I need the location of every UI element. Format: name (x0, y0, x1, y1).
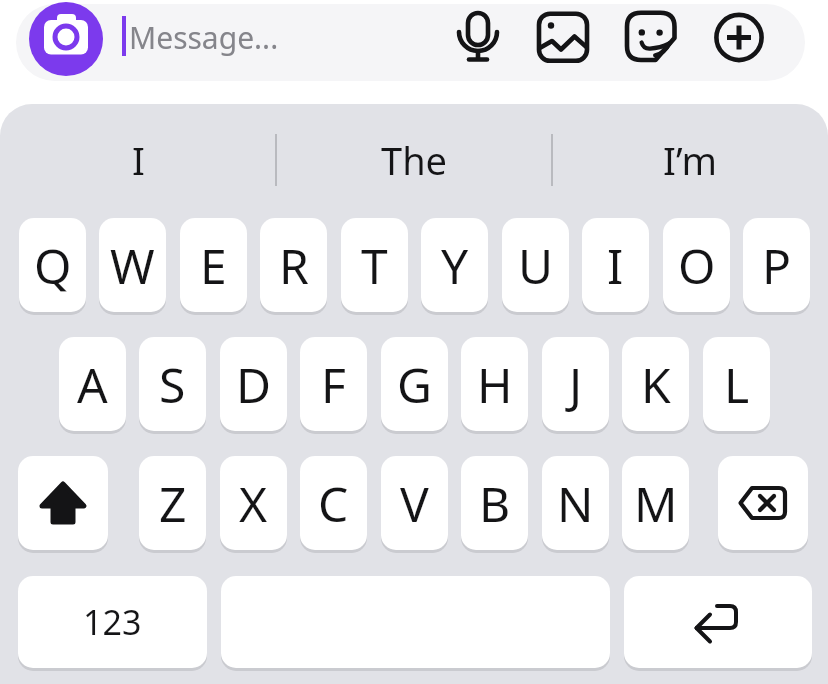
button[interactable]: W (99, 218, 166, 312)
button[interactable]: O (663, 218, 730, 312)
button[interactable]: T (341, 218, 408, 312)
button[interactable]: I (0, 112, 276, 208)
button[interactable]: B (461, 456, 528, 550)
button[interactable]: I’m (552, 112, 828, 208)
staticText: F (321, 352, 346, 417)
staticText: K (641, 352, 671, 417)
button[interactable]: F (300, 337, 367, 431)
button[interactable] (538, 12, 588, 62)
staticText: A (77, 352, 108, 417)
staticText: U (518, 233, 554, 298)
button[interactable] (29, 2, 103, 76)
button[interactable] (16, 4, 805, 81)
button[interactable]: J (542, 337, 609, 431)
staticText: I (132, 134, 145, 186)
button[interactable]: E (180, 218, 247, 312)
staticText: G (397, 352, 432, 417)
staticText: T (361, 233, 388, 298)
staticText: C (318, 471, 349, 536)
button[interactable]: H (461, 337, 528, 431)
button[interactable]: A (59, 337, 126, 431)
button[interactable]: U (502, 218, 569, 312)
staticText: M (634, 471, 678, 536)
button[interactable]: I (582, 218, 649, 312)
button[interactable] (714, 12, 764, 62)
button[interactable]: Z (139, 456, 206, 550)
button[interactable]: K (622, 337, 689, 431)
staticText: H (477, 352, 513, 417)
button[interactable]: M (622, 456, 689, 550)
button[interactable]: L (703, 337, 770, 431)
staticText: E (200, 233, 227, 298)
button[interactable]: V (381, 456, 448, 550)
staticText: N (557, 471, 594, 536)
staticText: O (678, 233, 716, 298)
staticText: P (762, 233, 792, 298)
button[interactable] (718, 456, 808, 550)
staticText: The (381, 134, 448, 186)
button[interactable]: N (542, 456, 609, 550)
staticText: I (607, 233, 624, 298)
button[interactable] (18, 456, 108, 550)
staticText: I’m (663, 134, 717, 186)
button[interactable]: G (381, 337, 448, 431)
button[interactable]: D (220, 337, 287, 431)
staticText: X (239, 471, 268, 536)
button[interactable] (624, 576, 812, 668)
button[interactable]: 123 (18, 576, 207, 668)
staticText: L (724, 352, 750, 417)
button[interactable]: The (276, 112, 552, 208)
staticText: B (479, 471, 511, 536)
button[interactable]: C (300, 456, 367, 550)
staticText: R (279, 233, 309, 298)
staticText: Y (441, 233, 469, 298)
staticText: Message... (129, 17, 279, 58)
button[interactable]: Y (421, 218, 488, 312)
staticText: W (110, 233, 155, 298)
staticText: S (159, 352, 186, 417)
button[interactable]: Q (19, 218, 86, 312)
staticText: D (236, 352, 272, 417)
staticText: J (569, 352, 583, 417)
staticText: Q (34, 233, 72, 298)
button[interactable]: S (139, 337, 206, 431)
button[interactable] (455, 8, 501, 64)
button[interactable]: P (743, 218, 810, 312)
button[interactable]: R (260, 218, 327, 312)
staticText: V (400, 471, 429, 536)
button[interactable]: X (220, 456, 287, 550)
staticText: Z (159, 471, 187, 536)
button[interactable] (625, 10, 677, 64)
staticText: 123 (83, 599, 142, 645)
